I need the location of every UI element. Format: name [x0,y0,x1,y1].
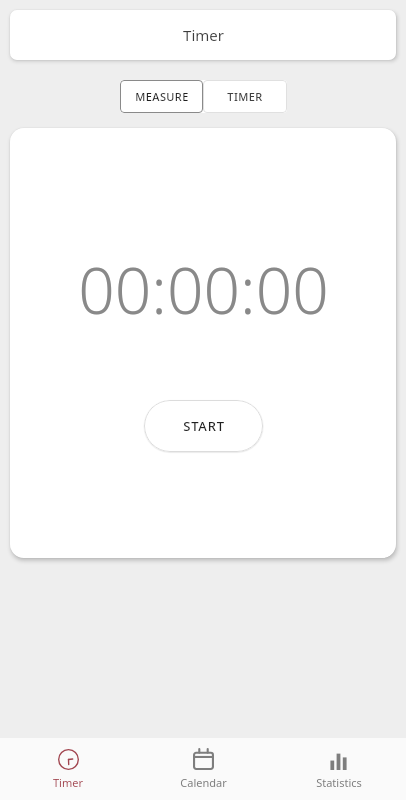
staticText: Timer [53,775,83,790]
button[interactable]: Calendar [136,738,271,800]
button[interactable]: Timer [10,10,396,60]
button[interactable]: Statistics [271,738,406,800]
staticText: 00:00:00 [78,246,329,333]
staticText: Timer [183,25,224,45]
button[interactable]: START [144,400,263,452]
button[interactable]: MEASURE [120,80,203,113]
staticText: MEASURE [135,89,189,104]
staticText: Statistics [316,775,362,790]
staticText: TIMER [227,89,263,104]
staticText: Calendar [180,775,227,790]
button[interactable]: TIMER [203,80,287,113]
staticText: START [183,417,225,435]
button[interactable]: Timer [0,738,136,800]
